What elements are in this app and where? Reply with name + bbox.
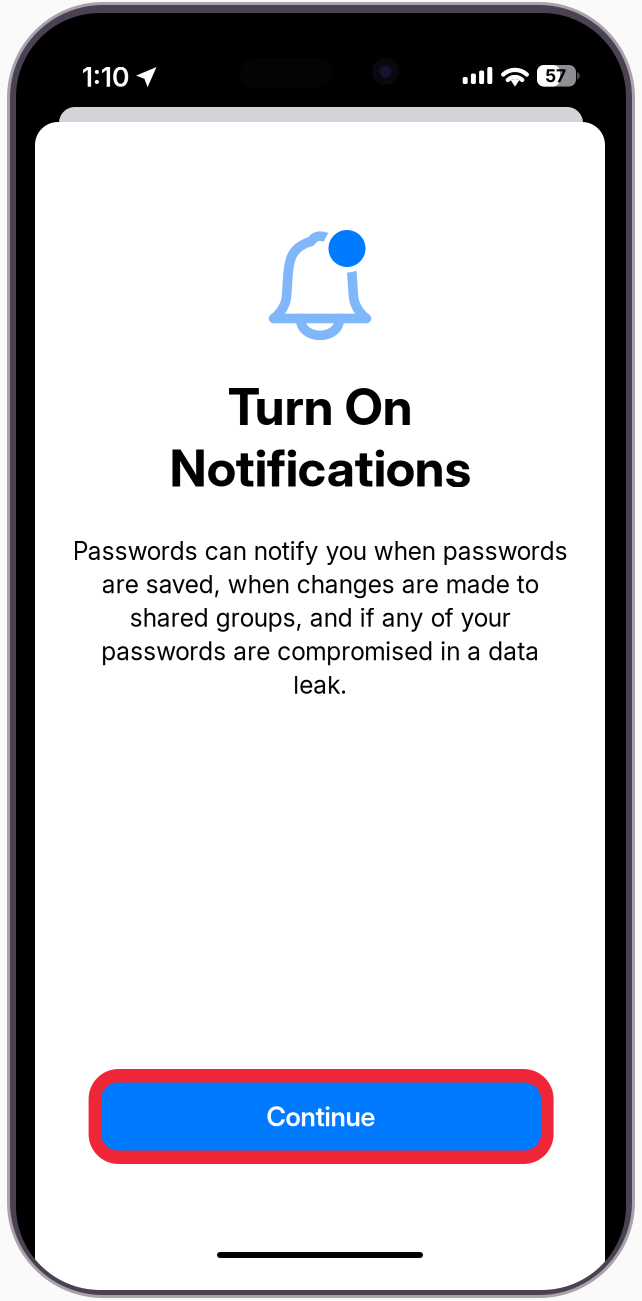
staticText: 1:10 — [82, 61, 129, 93]
staticText: 57 — [545, 66, 566, 87]
staticText: Continue — [267, 1100, 376, 1133]
button[interactable]: Continue — [89, 1069, 554, 1164]
staticText: Passwords can notify you when passwords … — [72, 536, 567, 700]
staticText: Turn On Notifications — [169, 376, 470, 499]
